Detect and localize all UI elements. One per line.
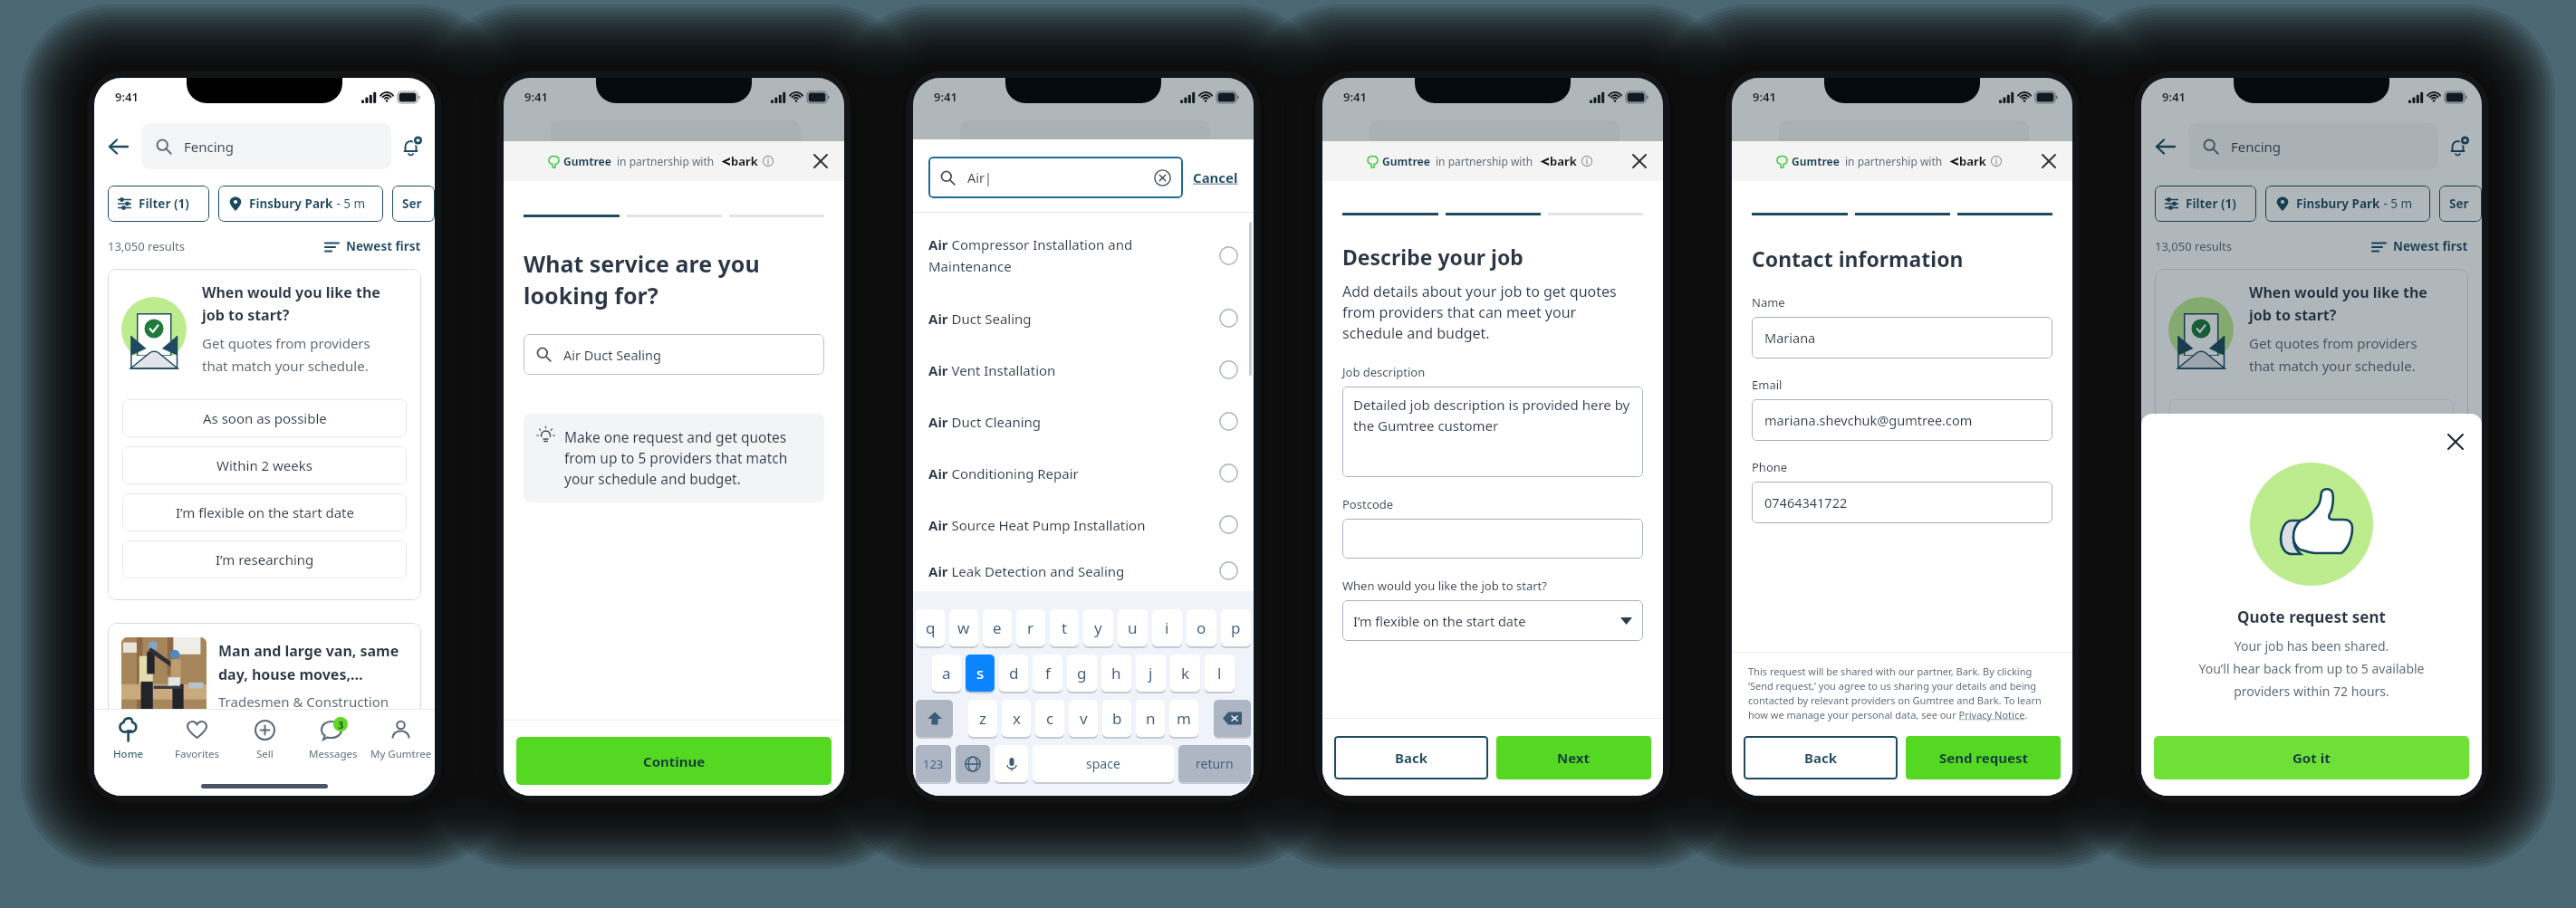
button[interactable]: Sell (2278, 710, 2346, 776)
button[interactable]: Continue (516, 737, 831, 785)
button[interactable]: Within 2 weeks (2169, 446, 2454, 484)
button[interactable]: p (1221, 609, 1251, 646)
button[interactable]: Finsbury Park (218, 186, 383, 222)
button[interactable]: Air Duct Sealing (913, 292, 1254, 344)
button[interactable]: Air Conditioning Repair (913, 447, 1254, 499)
button[interactable] (1342, 519, 1643, 559)
button[interactable]: Mariana (1752, 317, 2052, 358)
button[interactable]: w (949, 609, 978, 646)
button[interactable]: r (1016, 609, 1045, 646)
button[interactable]: space (1033, 745, 1174, 782)
button[interactable]: Send request (1906, 736, 2061, 779)
button[interactable]: Filter (1) (2155, 186, 2256, 222)
button[interactable]: a (932, 655, 961, 692)
button[interactable]: c (1035, 700, 1064, 737)
button[interactable]: l (1205, 655, 1235, 692)
button[interactable]: f (1033, 655, 1062, 692)
button[interactable]: h (1101, 655, 1131, 692)
button[interactable]: Notifications (2448, 136, 2470, 158)
button[interactable]: My Gumtree (367, 710, 435, 776)
button[interactable]: 3 (299, 710, 367, 776)
button[interactable]: Favorites (2210, 710, 2278, 776)
button[interactable]: v (1069, 700, 1098, 737)
button[interactable]: Shift (916, 700, 953, 737)
button[interactable]: Back (2156, 137, 2176, 157)
button[interactable]: Finsbury Park (2265, 186, 2430, 222)
button[interactable]: return (1178, 745, 1251, 782)
button[interactable]: Air Duct Cleaning (913, 396, 1254, 447)
button[interactable]: m (1169, 700, 1198, 737)
button[interactable]: As soon as possible (122, 399, 407, 437)
button[interactable]: Next (1496, 736, 1651, 779)
button[interactable]: Man and large van, same day, house moves… (108, 623, 421, 768)
button[interactable]: Back (1744, 736, 1898, 779)
button[interactable]: u (1118, 609, 1148, 646)
staticText: Gumtree (1792, 154, 1840, 168)
button[interactable]: s (966, 655, 995, 692)
button[interactable]: o (1187, 609, 1216, 646)
button[interactable]: Clear (1154, 169, 1171, 186)
button[interactable]: g (1067, 655, 1097, 692)
staticText: q (926, 617, 936, 638)
button[interactable]: I’m flexible on the start date (122, 493, 407, 531)
button[interactable]: My Gumtree (2414, 710, 2482, 776)
button[interactable]: Ser (392, 186, 435, 222)
button[interactable]: mariana.shevchuk@gumtree.com (1752, 399, 2052, 441)
button[interactable]: Sell (231, 710, 299, 776)
button[interactable]: t (1050, 609, 1079, 646)
button[interactable]: I’m researching (2169, 540, 2454, 578)
button[interactable]: Within 2 weeks (122, 446, 407, 484)
button[interactable]: 123 (916, 745, 951, 782)
button[interactable]: Close (2446, 432, 2465, 452)
button[interactable]: Newest first (2372, 238, 2468, 254)
button[interactable]: As soon as possible (2169, 399, 2454, 437)
button[interactable]: Notifications (401, 136, 423, 158)
button[interactable]: Air Vent Installation (913, 344, 1254, 396)
button[interactable]: k (1170, 655, 1200, 692)
button[interactable]: Got it (2154, 736, 2469, 779)
button[interactable]: Fencing (141, 123, 391, 169)
button[interactable]: Dictate (995, 745, 1028, 782)
button[interactable]: y (1083, 609, 1113, 646)
button[interactable]: Newest first (325, 238, 421, 254)
button[interactable]: Language (956, 745, 990, 782)
staticText: Sell (2303, 747, 2321, 761)
button[interactable]: Back (1334, 736, 1488, 779)
button[interactable]: x (1002, 700, 1031, 737)
button[interactable]: 07464341722 (1752, 482, 2052, 523)
button[interactable]: I’m flexible on the start date (2169, 493, 2454, 531)
button[interactable]: Detailed job description is provided her… (1342, 387, 1643, 477)
button[interactable]: Air Duct Sealing (524, 334, 824, 375)
button[interactable]: Home (2141, 710, 2210, 776)
button[interactable]: q (916, 609, 945, 646)
button[interactable]: Favorites (163, 710, 231, 776)
button[interactable]: i (1152, 609, 1182, 646)
button[interactable]: Fencing (2188, 123, 2438, 169)
button[interactable]: Man and large van, same day, house moves… (2155, 623, 2468, 768)
staticText: Within 2 weeks (216, 456, 312, 474)
button[interactable]: 3 (2346, 710, 2414, 776)
staticText: 9:41 (2162, 89, 2186, 105)
button[interactable]: Filter (1) (108, 186, 209, 222)
button[interactable]: n (1136, 700, 1165, 737)
button[interactable]: I’m researching (122, 540, 407, 578)
button[interactable]: z (968, 700, 997, 737)
button[interactable]: Cancel (1193, 168, 1238, 186)
button[interactable]: Back (109, 137, 129, 157)
button[interactable]: Home (94, 710, 163, 776)
button[interactable]: Air| (928, 157, 1183, 198)
button[interactable]: j (1136, 655, 1166, 692)
staticText: in partnership with (617, 154, 715, 168)
button[interactable]: b (1102, 700, 1131, 737)
button[interactable]: Air Source Heat Pump Installation (913, 499, 1254, 550)
button[interactable]: Close (1627, 148, 1652, 174)
button[interactable]: Close (2036, 148, 2062, 174)
button[interactable]: Air Leak Detection and Sealing (913, 550, 1254, 591)
button[interactable]: d (999, 655, 1028, 692)
button[interactable]: I’m flexible on the start date (1342, 600, 1643, 641)
button[interactable]: Air Compressor Installation and Maintena… (913, 218, 1254, 292)
button[interactable]: Ser (2439, 186, 2482, 222)
button[interactable]: e (983, 609, 1012, 646)
button[interactable]: Close (808, 148, 833, 174)
button[interactable]: Backspace (1214, 700, 1251, 737)
